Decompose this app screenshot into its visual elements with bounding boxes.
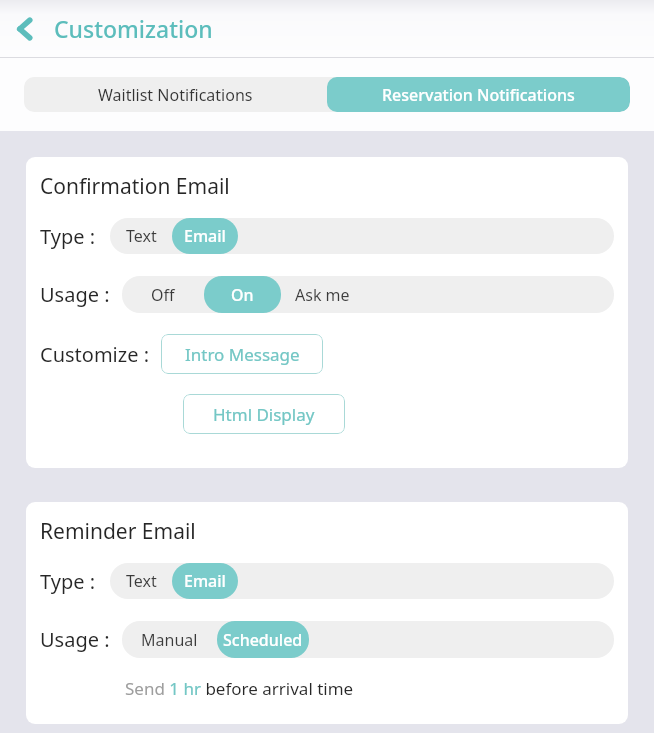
button[interactable]: Reservation Notifications: [327, 77, 630, 112]
staticText: Reminder Email: [40, 517, 196, 546]
button[interactable]: Ask me: [281, 276, 363, 313]
staticText: Type :: [40, 223, 96, 250]
staticText: Customization: [54, 13, 213, 44]
staticText: Manual: [141, 629, 198, 651]
staticText: Usage :: [40, 626, 110, 653]
button[interactable]: Email: [172, 218, 238, 254]
button[interactable]: Html Display: [183, 394, 345, 434]
button[interactable]: Off: [122, 276, 204, 313]
staticText: Html Display: [213, 403, 315, 426]
staticText: Email: [184, 570, 226, 592]
button[interactable]: Scheduled: [217, 621, 309, 658]
staticText: Send 1 hr before arrival time: [125, 677, 354, 700]
button[interactable]: Back: [2, 6, 48, 52]
button[interactable]: Manual: [122, 621, 217, 658]
button[interactable]: On: [204, 276, 281, 313]
staticText: Usage :: [40, 281, 110, 308]
staticText: Email: [184, 225, 226, 247]
staticText: Reservation Notifications: [382, 84, 575, 106]
button[interactable]: Email: [172, 563, 238, 599]
staticText: Scheduled: [223, 629, 303, 651]
button[interactable]: Intro Message: [161, 334, 323, 374]
staticText: Confirmation Email: [40, 172, 230, 201]
button[interactable]: Waitlist Notifications: [24, 77, 327, 112]
staticText: Waitlist Notifications: [98, 84, 253, 106]
staticText: On: [231, 284, 254, 306]
staticText: Text: [126, 225, 157, 247]
staticText: Intro Message: [185, 343, 300, 366]
staticText: Off: [151, 284, 175, 306]
staticText: Customize :: [40, 341, 149, 368]
staticText: Ask me: [295, 284, 350, 306]
button[interactable]: Text: [110, 563, 172, 599]
staticText: Type :: [40, 568, 96, 595]
button[interactable]: Text: [110, 218, 172, 254]
staticText: Text: [126, 570, 157, 592]
